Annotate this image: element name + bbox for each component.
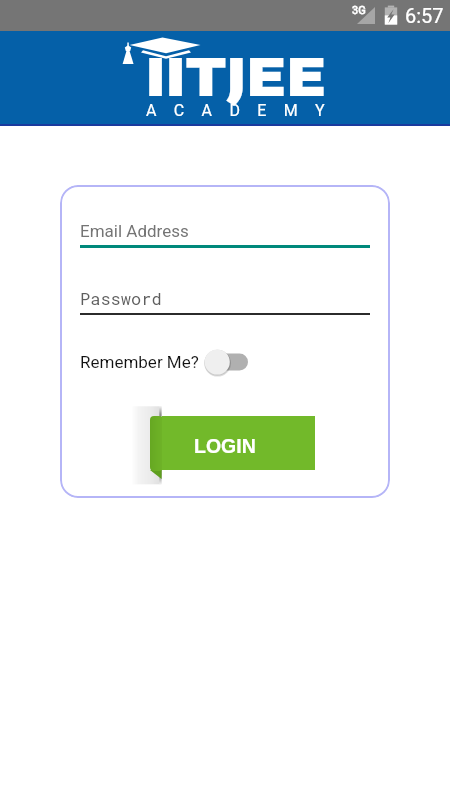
staticText: Password bbox=[80, 287, 162, 309]
staticText: ACADEMY bbox=[146, 101, 342, 120]
other: Remember Me bbox=[204, 347, 250, 377]
staticText: Email Address bbox=[80, 221, 189, 241]
staticText: Remember Me? bbox=[80, 352, 199, 372]
other: Signal strength bbox=[357, 7, 375, 24]
staticText: LOGIN bbox=[194, 435, 256, 457]
button[interactable] bbox=[130, 400, 320, 490]
button[interactable]: Email Address bbox=[80, 218, 370, 248]
staticText: IITJEE bbox=[146, 42, 327, 107]
staticText: 3G bbox=[352, 4, 366, 17]
button[interactable]: Password bbox=[80, 287, 370, 319]
other: Battery charging bbox=[384, 5, 398, 25]
staticText: 6:57 bbox=[405, 4, 444, 27]
button[interactable]: Remember Me? bbox=[80, 345, 250, 379]
